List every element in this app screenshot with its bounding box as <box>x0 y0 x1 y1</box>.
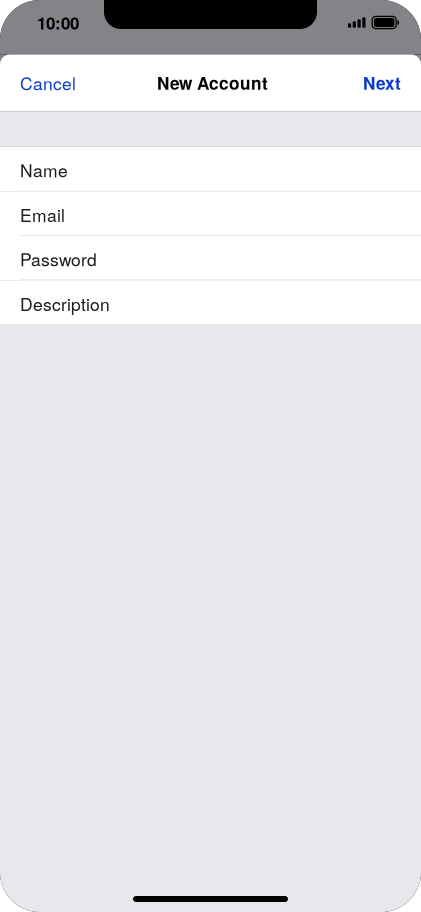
staticText: New Account <box>157 70 268 95</box>
staticText: Next <box>363 70 401 95</box>
button[interactable]: Description <box>0 280 421 325</box>
button[interactable]: Next <box>347 55 421 110</box>
button[interactable]: Cancel <box>0 55 92 110</box>
button[interactable]: Email <box>0 192 421 236</box>
staticText: Email <box>20 202 65 227</box>
button[interactable]: Name <box>0 146 421 192</box>
staticText: Cancel <box>20 70 76 95</box>
staticText: Description <box>20 291 110 316</box>
button[interactable]: Password <box>0 236 421 280</box>
staticText: Name <box>20 157 68 182</box>
staticText: 10:00 <box>37 10 79 35</box>
staticText: Password <box>20 246 97 271</box>
